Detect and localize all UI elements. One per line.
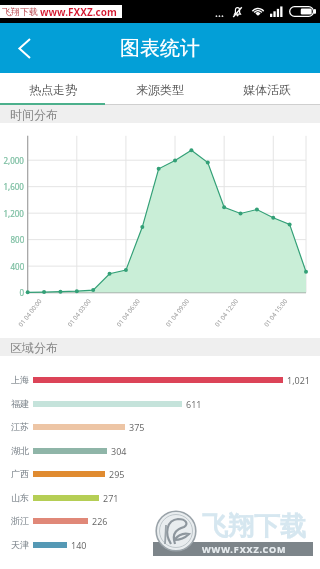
staticText: WWW.FXXZ.COM xyxy=(202,543,287,555)
staticText: 媒体活跃 xyxy=(243,82,291,97)
staticText: 热点走势 xyxy=(29,82,77,97)
button[interactable]: 江苏 xyxy=(0,415,320,438)
staticText: 295 xyxy=(109,468,125,480)
button[interactable]: 媒体活跃 xyxy=(213,73,320,105)
staticText: 来源类型 xyxy=(136,82,184,97)
staticText: 飞翔下载 xyxy=(2,6,38,17)
button[interactable]: 广西 xyxy=(0,462,320,485)
staticText: 375 xyxy=(129,421,145,433)
staticText: 1,021 xyxy=(287,374,311,386)
staticText: 304 xyxy=(111,445,127,457)
button[interactable]: Back xyxy=(0,23,48,73)
staticText: 广西 xyxy=(11,468,29,479)
button[interactable]: 山东 xyxy=(0,486,320,509)
staticText: 上海 xyxy=(11,374,29,385)
button[interactable]: 热点走势 xyxy=(0,73,106,105)
staticText: 时间分布 xyxy=(10,107,58,122)
staticText: 271 xyxy=(103,492,119,504)
staticText: 山东 xyxy=(11,492,29,503)
staticText: ... xyxy=(215,5,224,20)
staticText: 飞翔下载 xyxy=(202,510,306,543)
staticText: 江苏 xyxy=(11,421,29,432)
staticText: 湖北 xyxy=(11,445,29,456)
staticText: 图表统计 xyxy=(120,36,200,61)
staticText: 611 xyxy=(186,398,202,410)
button[interactable]: 福建 xyxy=(0,392,320,415)
staticText: 天津 xyxy=(11,539,29,550)
staticText: 140 xyxy=(71,539,87,551)
button[interactable]: 湖北 xyxy=(0,439,320,462)
staticText: 浙江 xyxy=(11,515,29,526)
staticText: 226 xyxy=(92,515,108,527)
staticText: www.FXXZ.com xyxy=(40,5,117,18)
button[interactable]: 来源类型 xyxy=(106,73,213,105)
button[interactable]: 天津 xyxy=(0,533,320,556)
button[interactable]: 浙江 xyxy=(0,509,320,532)
staticText: 区域分布 xyxy=(10,340,58,355)
button[interactable]: 上海 xyxy=(0,368,320,391)
staticText: 福建 xyxy=(11,398,29,409)
